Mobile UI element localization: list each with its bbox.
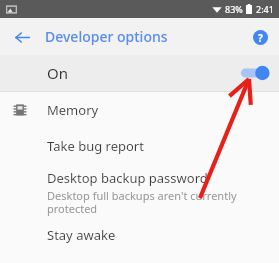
staticText: Take bug report [47,137,144,155]
staticText: 83% [225,3,243,15]
button[interactable]: Take bug report [0,128,279,164]
button[interactable]: Memory [0,92,279,128]
staticText: Stay awake [47,226,116,244]
button[interactable]: Stay awake [0,217,279,253]
staticText: Developer options [45,27,168,46]
button[interactable]: On [0,55,279,91]
button[interactable]: Help [248,25,272,49]
staticText: Memory [47,101,99,119]
staticText: Desktop full backups aren't currently pr… [47,188,237,216]
staticText: ? [258,31,263,45]
staticText: 2:41 [256,3,274,15]
staticText: On [47,63,68,83]
button[interactable]: Desktop backup password [0,164,279,217]
button[interactable]: Back [8,23,36,51]
staticText: Desktop backup password [47,169,208,187]
